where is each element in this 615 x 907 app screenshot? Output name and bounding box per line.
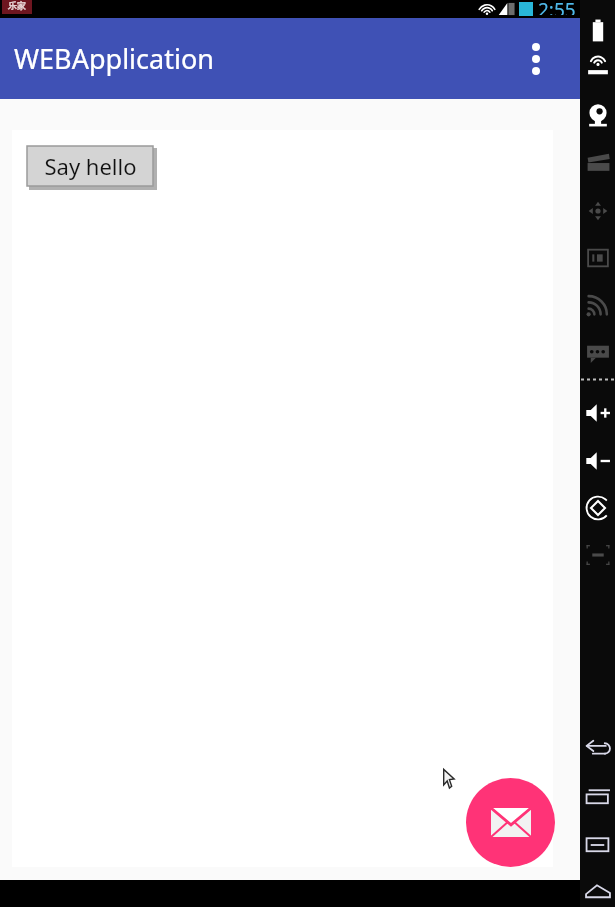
button[interactable]: Emulator control: [580, 782, 615, 812]
button[interactable]: Emulator control: [580, 398, 615, 428]
staticText: 2:55: [538, 0, 576, 15]
button[interactable]: Emulator control: [580, 338, 615, 368]
staticText: WEBApplication: [14, 40, 214, 77]
button[interactable]: More options: [512, 35, 560, 83]
button[interactable]: Emulator control: [580, 243, 615, 273]
button[interactable]: Emulator control: [580, 734, 615, 764]
button[interactable]: Emulator control: [580, 830, 615, 860]
button[interactable]: Emulator control: [580, 446, 615, 476]
button[interactable]: Compose message: [466, 778, 555, 867]
button[interactable]: Emulator control: [580, 147, 615, 177]
button[interactable]: Say hello: [27, 146, 155, 188]
button[interactable]: Emulator control: [580, 196, 615, 226]
button[interactable]: Emulator control: [580, 876, 615, 906]
button[interactable]: Emulator control: [580, 493, 615, 523]
button[interactable]: Emulator control: [580, 540, 615, 570]
staticText: 乐家: [8, 0, 26, 11]
button[interactable]: Emulator control: [580, 52, 615, 82]
button[interactable]: Emulator control: [580, 16, 615, 46]
staticText: Say hello: [44, 151, 137, 181]
button[interactable]: Emulator control: [580, 100, 615, 130]
button[interactable]: Emulator control: [580, 290, 615, 320]
